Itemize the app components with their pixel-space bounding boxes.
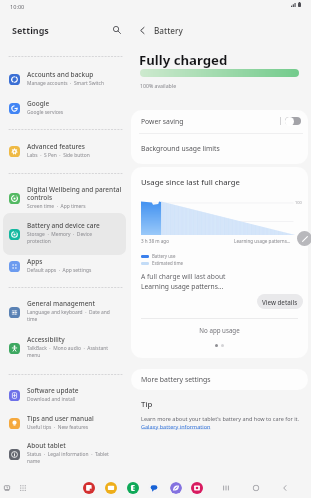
staticText: Battery and device care bbox=[27, 221, 100, 230]
staticText: Language and keyboard · Date and time bbox=[27, 309, 110, 322]
staticText: Accessibility bbox=[27, 335, 65, 344]
staticText: Useful tips · New features bbox=[27, 424, 89, 431]
button[interactable]: All apps bbox=[17, 482, 28, 493]
button[interactable]: Google bbox=[3, 91, 126, 125]
staticText: Power saving bbox=[141, 117, 184, 126]
staticText: Labs · S Pen · Side button bbox=[27, 152, 90, 159]
staticText: Settings bbox=[12, 24, 49, 36]
button[interactable]: Accessibility bbox=[3, 327, 126, 369]
staticText: Fully charged bbox=[139, 51, 228, 69]
staticText: General management bbox=[27, 299, 95, 308]
staticText: Usage since last full charge bbox=[141, 177, 240, 187]
staticText: Status · Legal information · Tablet name bbox=[27, 451, 109, 464]
button[interactable]: Edit bbox=[297, 231, 311, 246]
button[interactable]: Home bbox=[250, 482, 262, 494]
staticText: Learning usage patterns… bbox=[141, 282, 224, 291]
button[interactable]: Galaxy battery information bbox=[141, 423, 211, 430]
staticText: 100 bbox=[295, 200, 302, 205]
button[interactable]: General management bbox=[3, 291, 126, 333]
button[interactable]: Battery and device care bbox=[3, 213, 126, 255]
staticText: Learn more about your tablet's battery a… bbox=[141, 415, 300, 422]
staticText: Screen time · App timers bbox=[27, 203, 86, 210]
button[interactable]: Back bbox=[134, 22, 150, 38]
staticText: Apps bbox=[27, 257, 43, 266]
staticText: Digital Wellbeing and parental controls bbox=[27, 185, 122, 202]
staticText: Estimated time bbox=[152, 260, 184, 266]
staticText: Advanced features bbox=[27, 142, 85, 151]
button[interactable]: Power saving toggle bbox=[285, 117, 301, 125]
button[interactable]: Search bbox=[108, 21, 126, 39]
button[interactable]: phone bbox=[127, 482, 139, 494]
button[interactable]: Digital Wellbeing and parental controls bbox=[3, 177, 126, 219]
button[interactable]: More battery settings bbox=[131, 369, 308, 390]
button[interactable]: Power saving bbox=[131, 110, 308, 133]
button[interactable]: Software update bbox=[3, 378, 126, 412]
staticText: Battery use bbox=[152, 253, 176, 259]
button[interactable]: Recent apps bbox=[220, 482, 232, 494]
staticText: 10:00 bbox=[10, 3, 25, 11]
staticText: Battery bbox=[154, 25, 183, 36]
staticText: Manage accounts · Smart Switch bbox=[27, 80, 104, 87]
button[interactable]: Advanced features bbox=[3, 134, 126, 168]
button[interactable]: Tips and user manual bbox=[3, 406, 126, 440]
staticText: Software update bbox=[27, 386, 79, 395]
button[interactable]: Accounts and backup bbox=[3, 62, 126, 96]
button[interactable]: Recents bbox=[1, 482, 12, 493]
staticText: No app usage bbox=[131, 326, 308, 334]
button[interactable]: msg bbox=[148, 482, 160, 494]
button[interactable]: View details bbox=[257, 294, 303, 309]
button[interactable]: cam bbox=[191, 482, 203, 494]
button[interactable]: net bbox=[170, 482, 182, 494]
staticText: About tablet bbox=[27, 441, 66, 450]
staticText: Background usage limits bbox=[141, 144, 220, 153]
staticText: 100% available bbox=[140, 82, 177, 89]
staticText: Tip bbox=[141, 399, 153, 410]
staticText: Accounts and backup bbox=[27, 70, 94, 79]
staticText: Google bbox=[27, 99, 50, 108]
staticText: More battery settings bbox=[141, 375, 211, 384]
staticText: Tips and user manual bbox=[27, 414, 94, 423]
staticText: TalkBack · Mono audio · Assistant menu bbox=[27, 345, 108, 358]
staticText: Default apps · App settings bbox=[27, 267, 92, 274]
staticText: Storage · Memory · Device protection bbox=[27, 231, 92, 244]
button[interactable]: doc bbox=[83, 482, 95, 494]
staticText: View details bbox=[262, 298, 298, 306]
button[interactable]: Apps bbox=[3, 249, 126, 283]
staticText: A full charge will last about bbox=[141, 272, 226, 281]
button[interactable]: Background usage limits bbox=[131, 133, 308, 163]
staticText: 3 h 38 m ago bbox=[141, 238, 169, 244]
staticText: Download and install bbox=[27, 396, 76, 403]
staticText: Learning usage patterns… bbox=[234, 238, 291, 244]
staticText: Google services bbox=[27, 109, 64, 116]
button[interactable]: About tablet bbox=[3, 433, 126, 475]
button[interactable]: folder bbox=[105, 482, 117, 494]
button[interactable]: Back bbox=[279, 482, 291, 494]
